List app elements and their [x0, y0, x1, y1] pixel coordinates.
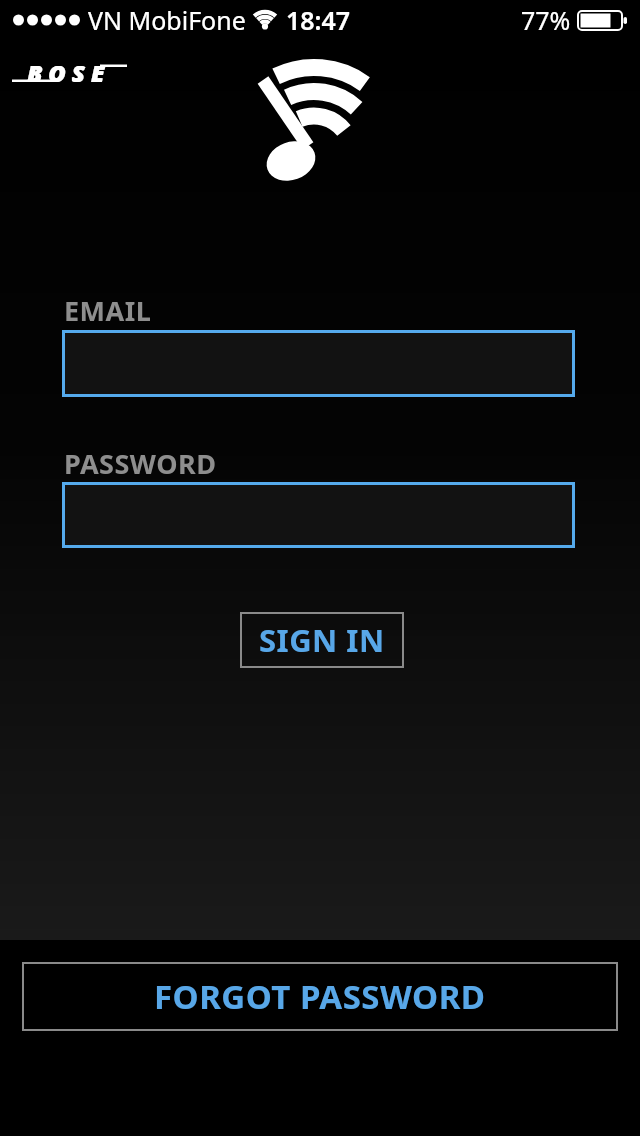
button[interactable]: [62, 482, 575, 548]
staticText: 77%: [521, 3, 571, 37]
button[interactable]: SIGN IN: [240, 612, 404, 668]
staticText: EMAIL: [64, 292, 152, 329]
staticText: BOSE: [27, 57, 111, 87]
staticText: 18:47: [286, 3, 351, 37]
button[interactable]: [62, 330, 575, 397]
staticText: BOSE: [28, 57, 112, 87]
staticText: PASSWORD: [64, 445, 217, 482]
staticText: SIGN IN: [259, 619, 385, 661]
button[interactable]: BOSE: [12, 58, 134, 88]
staticText: FORGOT PASSWORD: [154, 974, 486, 1019]
staticText: VN MobiFone: [88, 3, 246, 37]
button[interactable]: FORGOT PASSWORD: [22, 962, 618, 1031]
